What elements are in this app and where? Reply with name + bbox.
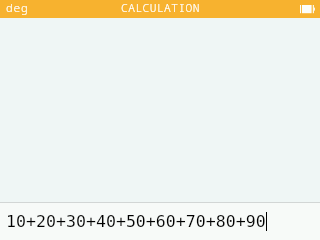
button[interactable]: Battery bbox=[300, 0, 320, 18]
staticText: deg bbox=[6, 0, 29, 15]
staticText: 10+20+30+40+50+60+70+80+90 bbox=[6, 212, 266, 231]
staticText: CALCULATION bbox=[121, 0, 200, 15]
button[interactable]: 10+20+30+40+50+60+70+80+90 bbox=[0, 203, 320, 240]
